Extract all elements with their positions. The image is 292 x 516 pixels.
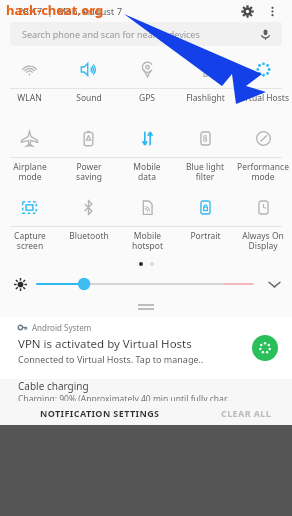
- staticText: Mobile data: [133, 161, 161, 182]
- button[interactable]: Blue light filter: [176, 119, 234, 157]
- other: Voice search: [256, 25, 274, 43]
- staticText: Performance mode: [237, 161, 289, 182]
- staticText: Android System: [32, 322, 92, 333]
- button[interactable]: WLAN: [0, 50, 59, 88]
- button[interactable]: Expand brightness settings: [264, 274, 284, 294]
- button[interactable]: Mobile hotspot: [118, 188, 176, 226]
- staticText: Connected to Virtual Hosts. Tap to manag…: [18, 353, 204, 365]
- button[interactable]: Flashlight: [176, 50, 234, 88]
- staticText: Mobile hotspot: [132, 230, 163, 251]
- staticText: Cable charging: [18, 379, 89, 393]
- button[interactable]: Sound: [59, 50, 118, 88]
- staticText: Power saving: [76, 161, 102, 182]
- button[interactable]: Bluetooth: [59, 188, 118, 226]
- staticText: GPS: [139, 92, 155, 104]
- button[interactable]: Capture screen: [0, 188, 59, 226]
- button[interactable]: Settings: [236, 0, 258, 22]
- button[interactable]: Brightness: [37, 274, 256, 294]
- button[interactable]: Airplane mode: [0, 119, 59, 157]
- other: Virtual Hosts: [252, 335, 278, 361]
- staticText: Airplane mode: [13, 161, 47, 182]
- staticText: Flashlight: [186, 92, 225, 104]
- button[interactable]: GPS: [118, 50, 176, 88]
- button[interactable]: CLEAR ALL: [200, 401, 292, 425]
- button[interactable]: More options: [262, 1, 282, 21]
- staticText: Blue light filter: [186, 161, 224, 182]
- staticText: NOTIFICATION SETTINGS: [40, 407, 160, 419]
- button[interactable]: Search phone and scan for nearby devices: [10, 22, 282, 46]
- staticText: Portrait: [190, 230, 221, 242]
- staticText: 23:17 | Mon, August 7: [18, 5, 123, 18]
- staticText: Capture screen: [14, 230, 46, 251]
- staticText: Virtual Hosts: [238, 92, 289, 104]
- staticText: VPN is activated by Virtual Hosts: [18, 336, 192, 352]
- button[interactable]: NOTIFICATION SETTINGS: [0, 401, 200, 425]
- staticText: Search phone and scan for nearby devices: [22, 28, 200, 40]
- button[interactable]: Cable charging: [18, 379, 292, 401]
- button[interactable]: Virtual Hosts: [234, 50, 292, 88]
- button[interactable]: Portrait: [176, 188, 234, 226]
- staticText: CLEAR ALL: [221, 407, 272, 419]
- staticText: Sound: [76, 92, 102, 104]
- button[interactable]: Power saving: [59, 119, 118, 157]
- staticText: hack-cheat.org: [6, 1, 104, 19]
- button[interactable]: Performance mode: [234, 119, 292, 157]
- button[interactable]: Android System: [0, 317, 292, 379]
- staticText: Always On Display: [242, 230, 284, 251]
- button[interactable]: Mobile data: [118, 119, 176, 157]
- staticText: Charging: 90% (Approximately 40 min unti…: [18, 393, 231, 401]
- staticText: WLAN: [17, 92, 42, 104]
- staticText: Bluetooth: [69, 230, 109, 242]
- button[interactable]: Always On Display: [234, 188, 292, 226]
